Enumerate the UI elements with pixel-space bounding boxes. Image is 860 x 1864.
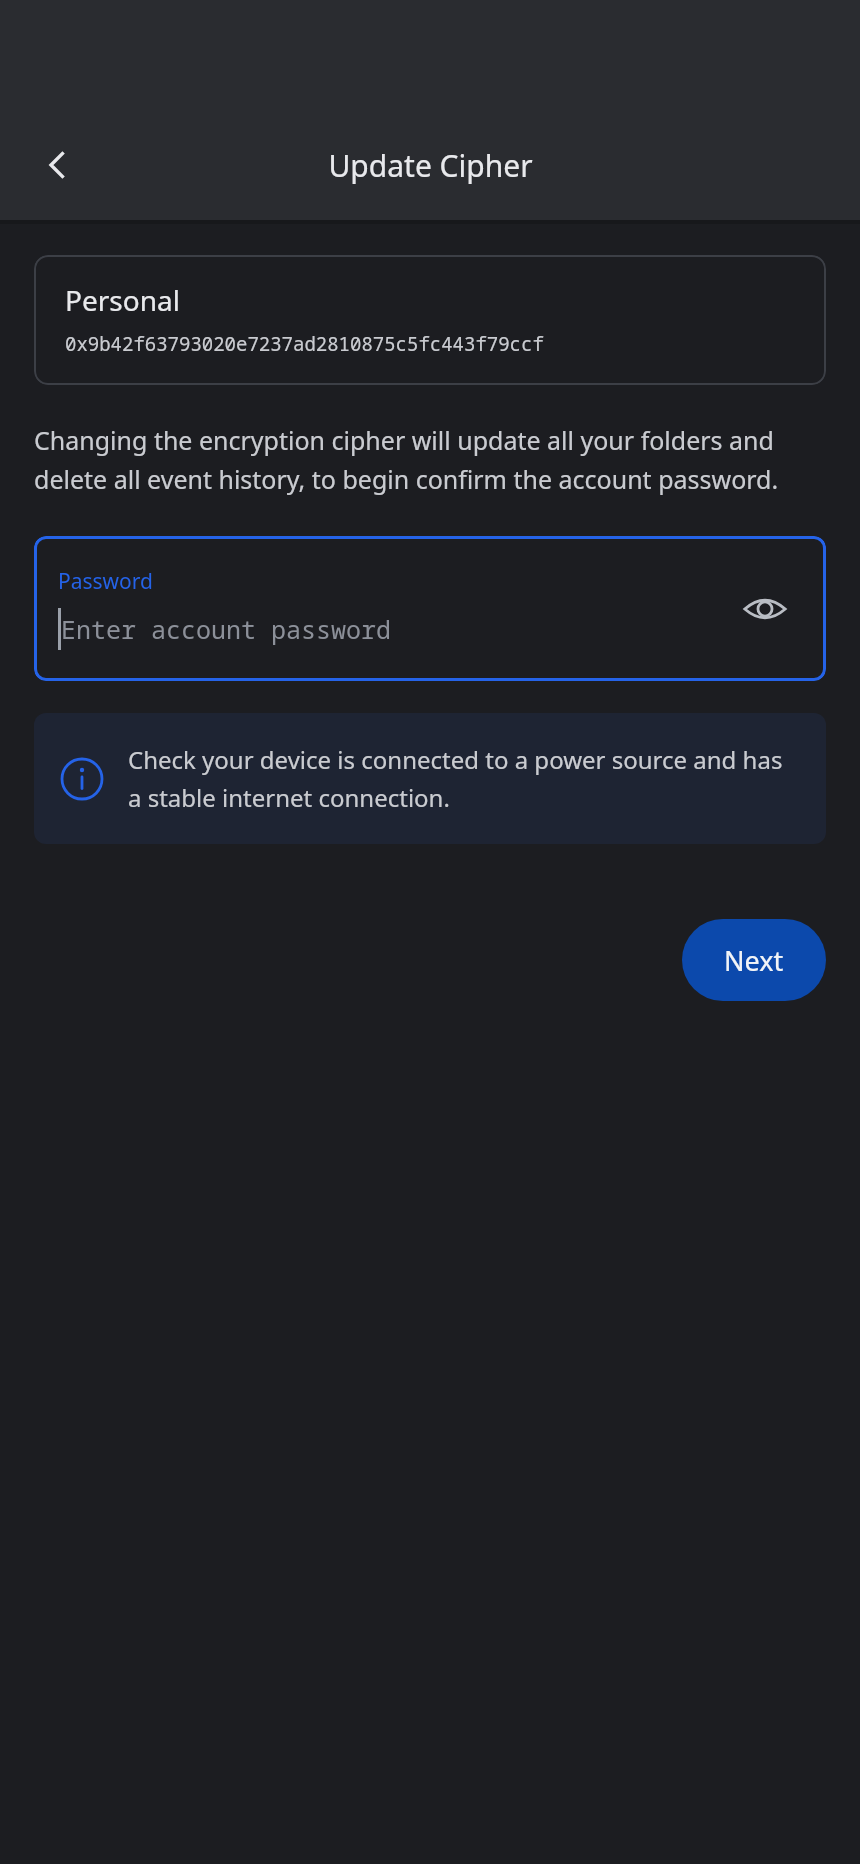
staticText: Personal xyxy=(65,281,180,319)
button[interactable]: Check your device is connected to a powe… xyxy=(34,713,826,844)
staticText: Next xyxy=(724,942,784,979)
staticText: Password xyxy=(58,567,153,596)
button[interactable]: Show password xyxy=(732,576,798,642)
staticText: Check your device is connected to a powe… xyxy=(128,743,800,814)
button[interactable]: Back xyxy=(26,134,88,196)
button[interactable]: Personal xyxy=(34,255,826,385)
staticText: Enter account password xyxy=(61,612,392,646)
staticText: Changing the encryption cipher will upda… xyxy=(34,423,826,497)
button[interactable]: Next xyxy=(682,919,826,1001)
staticText: 0x9b42f63793020e7237ad2810875c5fc443f79c… xyxy=(65,331,544,357)
button[interactable]: Password xyxy=(34,536,826,681)
staticText: Update Cipher xyxy=(328,145,533,186)
